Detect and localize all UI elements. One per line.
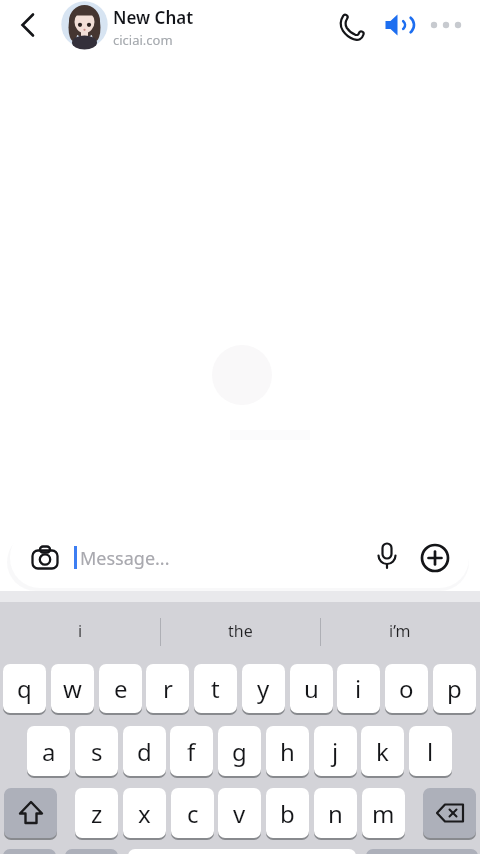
staticText: j — [332, 735, 339, 768]
staticText: c — [187, 797, 199, 830]
staticText: q — [17, 672, 32, 705]
button[interactable]: c — [171, 788, 214, 838]
button[interactable]: q — [3, 664, 46, 713]
button[interactable] — [10, 8, 44, 42]
staticText: i’m — [389, 620, 411, 642]
button[interactable] — [128, 849, 356, 854]
button[interactable] — [428, 11, 464, 39]
button[interactable]: b — [266, 788, 309, 838]
staticText: v — [233, 797, 246, 830]
staticText: New Chat — [113, 6, 194, 29]
staticText: e — [114, 672, 128, 705]
button[interactable]: r — [146, 664, 189, 713]
button[interactable]: y — [242, 664, 285, 713]
button[interactable]: k — [361, 726, 404, 776]
button[interactable] — [420, 543, 450, 573]
button[interactable]: Message... — [10, 527, 469, 588]
button[interactable]: f — [170, 726, 213, 776]
button[interactable] — [383, 11, 411, 39]
staticText: y — [257, 672, 270, 705]
staticText: l — [427, 735, 434, 768]
button[interactable]: i’m — [320, 602, 480, 659]
button[interactable] — [423, 788, 476, 838]
staticText: Message... — [80, 546, 170, 571]
button[interactable]: l — [409, 726, 452, 776]
staticText: m — [372, 797, 395, 830]
staticText: r — [163, 672, 173, 705]
staticText: w — [63, 672, 82, 705]
button[interactable]: h — [266, 726, 309, 776]
button[interactable]: w — [51, 664, 94, 713]
staticText: i — [78, 620, 83, 642]
button[interactable] — [3, 849, 56, 854]
staticText: t — [211, 672, 220, 705]
staticText: f — [187, 735, 196, 768]
staticText: the — [228, 620, 253, 642]
button[interactable]: m — [362, 788, 405, 838]
staticText: b — [280, 797, 295, 830]
staticText: g — [232, 735, 247, 768]
button[interactable]: d — [123, 726, 166, 776]
button[interactable]: n — [314, 788, 357, 838]
button[interactable] — [366, 849, 478, 854]
button[interactable]: j — [314, 726, 357, 776]
button[interactable]: v — [218, 788, 261, 838]
staticText: x — [138, 797, 151, 830]
staticText: h — [280, 735, 295, 768]
staticText: n — [328, 797, 343, 830]
button[interactable]: u — [290, 664, 333, 713]
button[interactable]: p — [433, 664, 476, 713]
staticText: o — [399, 672, 414, 705]
button[interactable]: g — [218, 726, 261, 776]
button[interactable]: i — [0, 602, 160, 659]
button[interactable]: o — [385, 664, 428, 713]
staticText: k — [376, 735, 389, 768]
staticText: u — [304, 672, 319, 705]
button[interactable] — [334, 11, 362, 39]
staticText: i — [355, 672, 362, 705]
button[interactable]: e — [99, 664, 142, 713]
button[interactable]: t — [194, 664, 237, 713]
staticText: ciciai.com — [113, 31, 173, 49]
button[interactable]: x — [123, 788, 166, 838]
staticText: a — [42, 735, 56, 768]
staticText: s — [91, 735, 103, 768]
button[interactable] — [372, 541, 402, 571]
button[interactable] — [65, 849, 118, 854]
button[interactable]: z — [75, 788, 118, 838]
button[interactable] — [4, 788, 57, 838]
staticText: d — [137, 735, 152, 768]
button[interactable]: i — [337, 664, 380, 713]
button[interactable]: s — [75, 726, 118, 776]
staticText: p — [447, 672, 462, 705]
button[interactable]: a — [27, 726, 70, 776]
button[interactable]: the — [160, 602, 320, 659]
staticText: z — [91, 797, 103, 830]
